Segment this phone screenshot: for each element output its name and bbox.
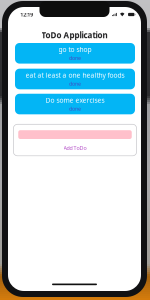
staticText: eat at least a one healthy foods — [25, 71, 124, 80]
staticText: done — [69, 54, 81, 62]
staticText: done — [69, 80, 81, 87]
staticText: Do some exercises — [45, 96, 104, 105]
button[interactable]: Do some exercises — [15, 94, 135, 114]
staticText: ToDo Application — [41, 30, 107, 40]
staticText: done — [69, 105, 81, 112]
staticText: Add ToDo — [63, 144, 86, 151]
staticText: go to shop — [58, 45, 91, 54]
button[interactable]: eat at least a one healthy foods — [15, 69, 135, 89]
staticText: 12:19 — [20, 11, 33, 18]
button[interactable]: Add ToDo — [13, 143, 137, 152]
button[interactable]: go to shop — [15, 43, 135, 64]
